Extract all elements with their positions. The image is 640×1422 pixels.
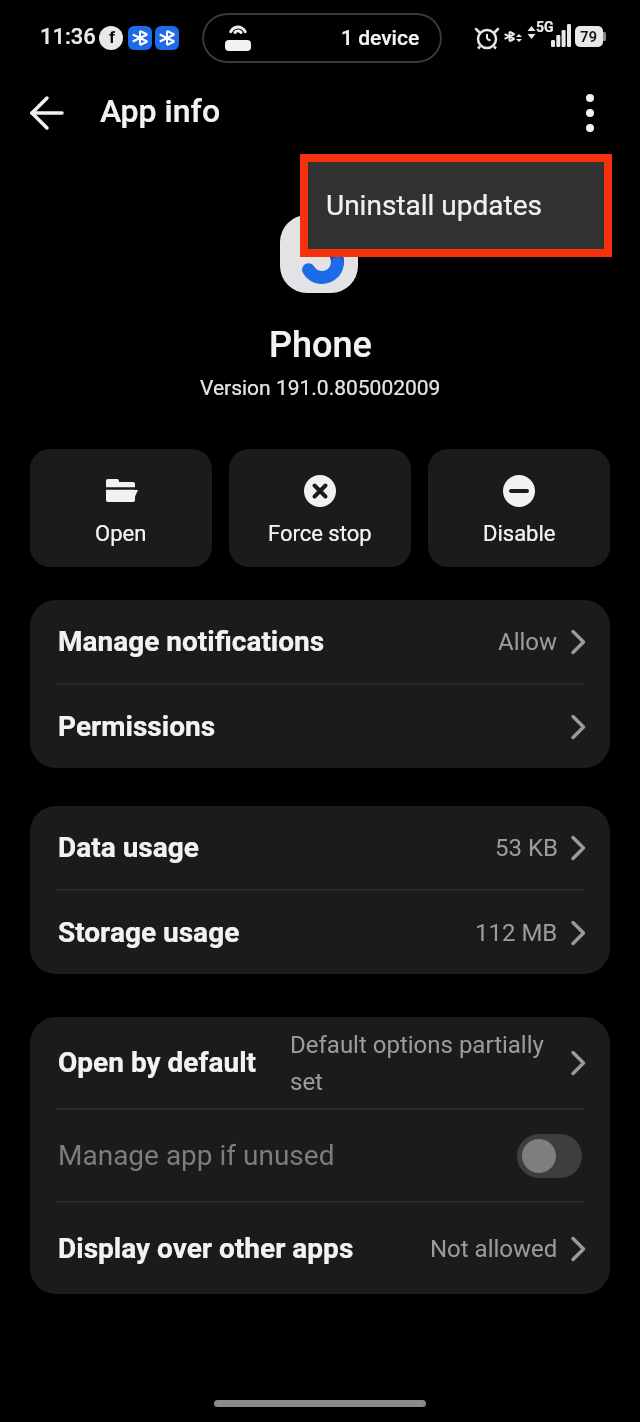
button[interactable]: Force stop	[229, 449, 411, 567]
staticText: f	[109, 27, 116, 47]
staticText: Phone	[269, 324, 372, 366]
staticText: Data usage	[58, 831, 199, 864]
staticText: Storage usage	[58, 916, 240, 949]
staticText: 79	[580, 28, 598, 46]
button[interactable]: Manage notifications	[30, 600, 610, 683]
staticText: 1 device	[341, 26, 420, 51]
button[interactable]: Storage usage	[30, 891, 610, 974]
button[interactable]	[517, 1134, 582, 1178]
staticText: Uninstall updates	[326, 189, 542, 222]
staticText: Default options partially set	[290, 1031, 558, 1095]
button[interactable]	[570, 85, 610, 141]
staticText: 5G	[536, 19, 554, 35]
staticText: Allow	[498, 628, 558, 656]
button[interactable]: Open	[30, 449, 212, 567]
staticText: Manage app if unused	[58, 1139, 335, 1172]
button[interactable]: Open by default	[30, 1017, 610, 1108]
button[interactable]: 1 device	[202, 13, 442, 63]
staticText: App info	[100, 92, 221, 130]
staticText: Not allowed	[430, 1235, 558, 1263]
staticText: 11:36	[40, 24, 96, 50]
button[interactable]: Display over other apps	[30, 1203, 610, 1294]
button[interactable]: Disable	[428, 449, 610, 567]
staticText: 112 MB	[475, 919, 558, 947]
staticText: Version 191.0.805002009	[200, 376, 441, 401]
staticText: Disable	[483, 521, 556, 547]
button[interactable]: Manage app if unused	[30, 1110, 610, 1201]
staticText: Open	[95, 521, 147, 547]
button[interactable]: Uninstall updates	[308, 162, 604, 249]
staticText: Manage notifications	[58, 625, 325, 658]
button[interactable]: Data usage	[30, 806, 610, 889]
staticText: Display over other apps	[58, 1232, 354, 1265]
button[interactable]	[20, 90, 76, 136]
staticText: 53 KB	[495, 834, 558, 862]
button[interactable]: Permissions	[30, 685, 610, 768]
staticText: Permissions	[58, 710, 216, 743]
staticText: Force stop	[268, 521, 372, 547]
staticText: Open by default	[58, 1046, 257, 1079]
